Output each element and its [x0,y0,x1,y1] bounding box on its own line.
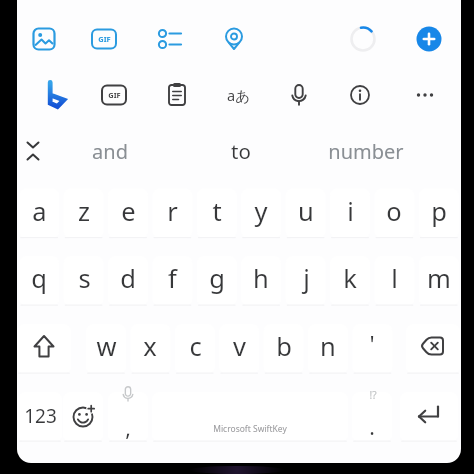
staticText: f [168,261,177,296]
staticText: number [328,138,404,165]
staticText: s [78,261,91,296]
staticText: y [254,194,268,229]
staticText: b [276,329,292,364]
staticText: x [143,329,157,364]
staticText: i [347,194,354,229]
staticText: e [121,194,136,229]
staticText: aあ [227,85,250,105]
staticText: j [303,261,310,296]
staticText: g [209,261,225,296]
staticText: o [386,194,402,229]
staticText: w [96,329,117,364]
staticText: u [298,194,314,229]
staticText: Microsoft SwiftKey [213,423,287,435]
staticText: z [78,194,90,229]
staticText: m [427,261,451,296]
staticText: d [120,261,136,296]
staticText: n [320,329,336,364]
staticText: h [253,261,269,296]
staticText: , [125,414,131,443]
staticText: p [431,194,447,229]
staticText: l [391,261,398,296]
staticText: v [233,329,246,364]
staticText: c [189,329,202,364]
staticText: t [212,194,222,229]
staticText: r [167,194,178,229]
staticText: k [343,261,357,296]
staticText: q [31,261,47,296]
staticText: ' [369,328,375,359]
staticText: GIF [108,90,121,100]
staticText: and [92,138,128,165]
staticText: !? [369,388,377,402]
staticText: GIF [98,34,111,44]
staticText: to [231,137,251,165]
staticText: 123 [24,403,57,429]
staticText: . [369,413,375,442]
staticText: a [32,194,47,229]
